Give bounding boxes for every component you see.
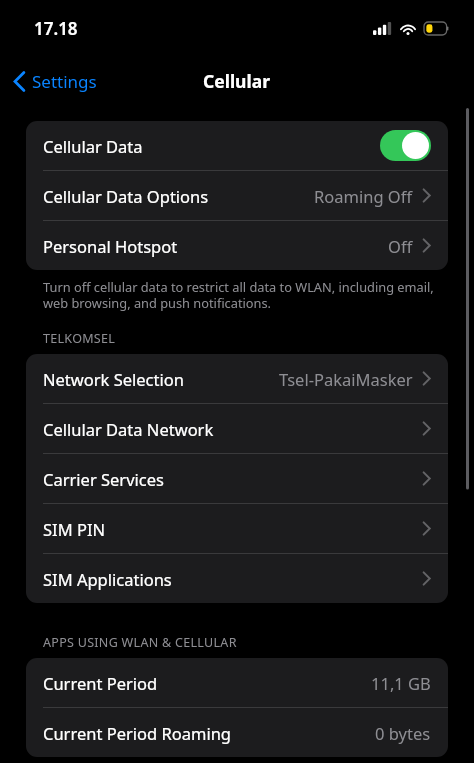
button[interactable]: Network Selection (26, 354, 448, 403)
staticText: 17.18 (34, 17, 78, 40)
staticText: Personal Hotspot (43, 235, 178, 257)
staticText: Cellular Data (43, 135, 143, 157)
staticText: Tsel-PakaiMasker (279, 368, 413, 390)
staticText: TELKOMSEL (43, 330, 474, 347)
staticText: Carrier Services (43, 468, 164, 490)
button[interactable]: Toggle Cellular Data (380, 130, 431, 161)
staticText: Off (388, 235, 413, 257)
button[interactable]: Cellular Data (26, 121, 448, 170)
button[interactable]: Cellular Data Options (26, 171, 448, 220)
button[interactable]: Current Period (26, 658, 448, 707)
staticText: Current Period Roaming (43, 722, 231, 744)
button[interactable]: Current Period Roaming (26, 708, 448, 757)
button[interactable]: Carrier Services (26, 454, 448, 503)
staticText: Cellular (203, 69, 271, 93)
button[interactable]: SIM PIN (26, 504, 448, 553)
staticText: Turn off cellular data to restrict all d… (43, 278, 440, 312)
staticText: SIM PIN (43, 518, 106, 540)
button[interactable]: Personal Hotspot (26, 221, 448, 270)
button[interactable]: Cellular Data Network (26, 404, 448, 453)
staticText: Settings (32, 70, 97, 93)
staticText: Current Period (43, 672, 158, 694)
staticText: APPS USING WLAN & CELLULAR (43, 634, 474, 651)
staticText: 0 bytes (375, 722, 431, 744)
staticText: 11,1 GB (371, 672, 431, 694)
button[interactable]: Settings (0, 63, 109, 100)
staticText: Cellular Data Network (43, 418, 214, 440)
staticText: Roaming Off (314, 185, 413, 207)
staticText: Cellular Data Options (43, 185, 209, 207)
staticText: Network Selection (43, 368, 184, 390)
button[interactable]: SIM Applications (26, 554, 448, 603)
staticText: SIM Applications (43, 568, 172, 590)
